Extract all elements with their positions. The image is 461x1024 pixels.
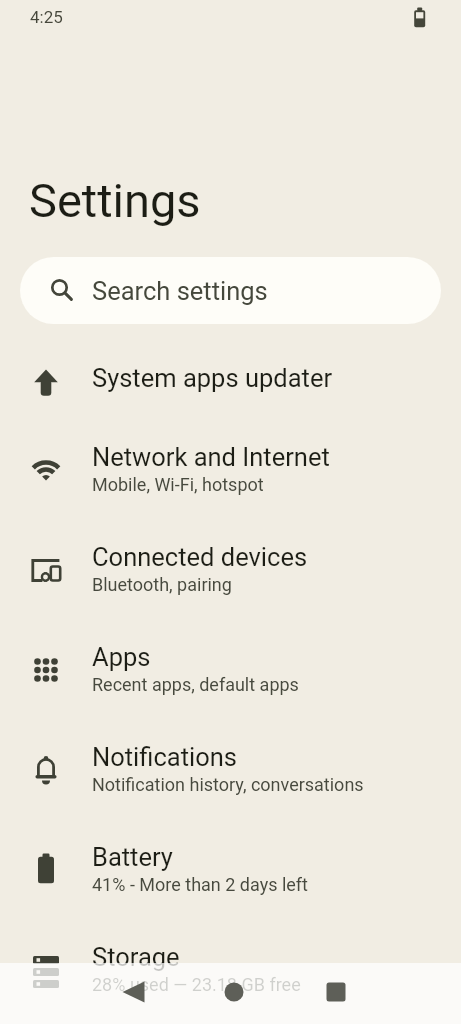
button[interactable]: Network and Internet <box>0 420 461 520</box>
button[interactable]: Search settings <box>20 257 441 324</box>
button[interactable] <box>212 970 256 1014</box>
staticText: Storage <box>92 942 180 972</box>
button[interactable]: Storage <box>0 920 461 1020</box>
staticText: System apps updater <box>92 363 333 393</box>
staticText: 4:25 <box>30 7 63 27</box>
staticText: Bluetooth, pairing <box>92 574 232 595</box>
button[interactable]: Apps <box>0 620 461 720</box>
button[interactable]: Connected devices <box>0 520 461 620</box>
staticText: Settings <box>29 173 201 228</box>
staticText: Mobile, Wi-Fi, hotspot <box>92 474 264 495</box>
staticText: Network and Internet <box>92 442 330 472</box>
button[interactable]: Battery <box>0 820 461 920</box>
staticText: Notifications <box>92 742 237 772</box>
staticText: 41% - More than 2 days left <box>92 874 308 895</box>
button[interactable] <box>112 970 156 1014</box>
button[interactable]: Notifications <box>0 720 461 820</box>
staticText: Recent apps, default apps <box>92 674 299 695</box>
staticText: Connected devices <box>92 542 308 572</box>
button[interactable]: System apps updater <box>0 340 461 420</box>
staticText: Search settings <box>92 276 268 306</box>
button[interactable] <box>314 970 358 1014</box>
staticText: Notification history, conversations <box>92 774 364 795</box>
staticText: 28% used — 23.18 GB free <box>92 974 301 995</box>
staticText: Apps <box>92 642 151 672</box>
staticText: Battery <box>92 842 173 872</box>
